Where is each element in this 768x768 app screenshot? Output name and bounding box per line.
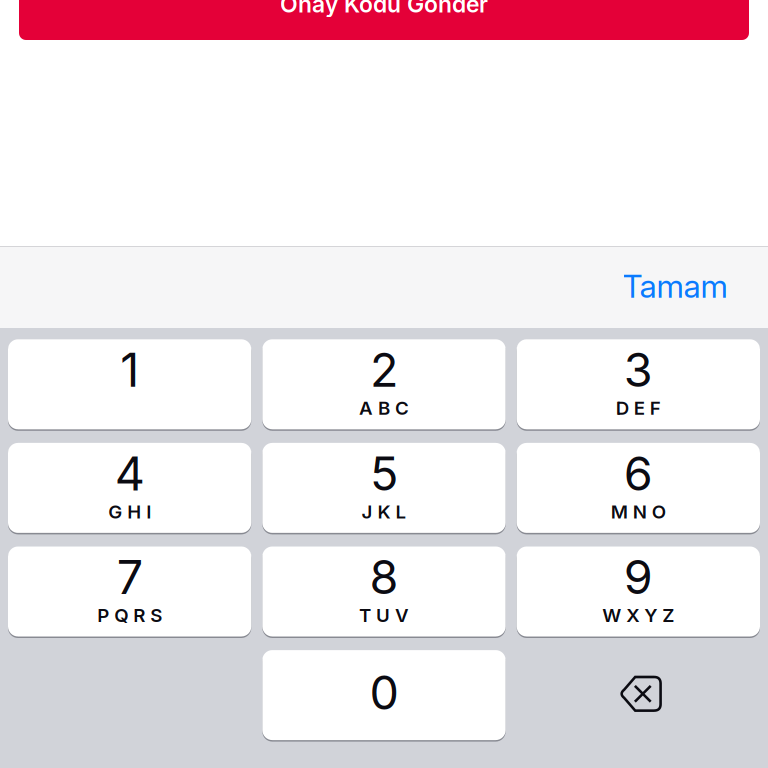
button[interactable]: 3 — [517, 339, 760, 429]
staticText: J K L — [361, 500, 406, 523]
staticText: 9 — [624, 549, 653, 605]
staticText: W X Y Z — [602, 604, 674, 626]
staticText: 6 — [624, 445, 653, 502]
staticText: 7 — [117, 549, 143, 605]
button[interactable]: Delete — [517, 650, 760, 740]
staticText: 4 — [115, 445, 145, 502]
staticText: D E F — [616, 397, 661, 419]
staticText: G H I — [108, 500, 151, 523]
button[interactable]: 4 — [8, 443, 251, 533]
button[interactable]: Onay Kodu Gönder — [19, 0, 749, 40]
button[interactable]: 2 — [262, 339, 506, 429]
staticText: 1 — [120, 342, 139, 398]
button[interactable]: 8 — [262, 546, 506, 636]
staticText: P Q R S — [97, 604, 162, 626]
button[interactable]: Tamam — [600, 263, 750, 309]
staticText: 0 — [369, 664, 398, 721]
button[interactable]: 0 — [262, 650, 506, 740]
button[interactable]: 7 — [8, 546, 251, 636]
staticText: A B C — [359, 397, 409, 419]
staticText: Tamam — [622, 267, 727, 305]
staticText: T U V — [359, 604, 409, 626]
staticText: 3 — [624, 342, 653, 398]
staticText: 2 — [370, 342, 398, 398]
button[interactable]: 1 — [8, 339, 251, 429]
staticText: M N O — [611, 500, 666, 523]
button[interactable]: 6 — [517, 443, 760, 533]
staticText: Onay Kodu Gönder — [280, 0, 488, 18]
button[interactable]: 9 — [517, 546, 760, 636]
button[interactable]: 5 — [262, 443, 506, 533]
staticText: 8 — [369, 549, 398, 605]
staticText: 5 — [370, 445, 398, 502]
